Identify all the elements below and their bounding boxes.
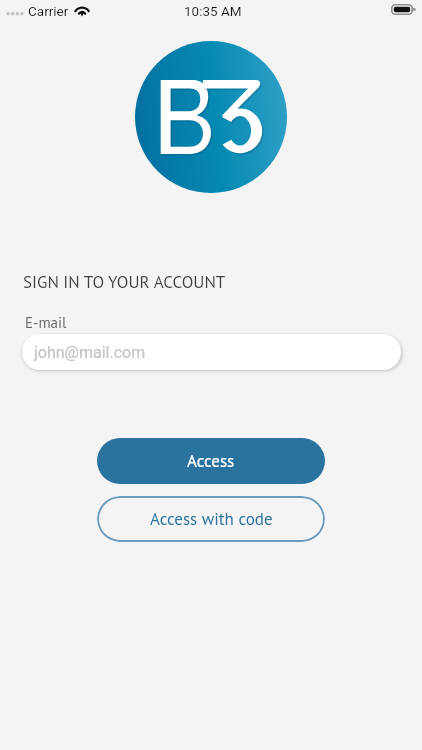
staticText: john@mail.com xyxy=(34,343,146,362)
button[interactable]: john@mail.com xyxy=(22,334,401,370)
staticText: Access with code xyxy=(150,508,273,530)
staticText: Access xyxy=(187,450,235,472)
staticText: 10:35 AM xyxy=(184,3,242,19)
staticText: SIGN IN TO YOUR ACCOUNT xyxy=(23,271,226,293)
other: Wi-Fi signal xyxy=(74,4,90,16)
button[interactable]: Access xyxy=(97,438,325,484)
other: Battery full xyxy=(391,4,417,15)
button[interactable]: Access with code xyxy=(97,496,325,542)
staticText: E-mail xyxy=(25,313,67,332)
staticText: Carrier xyxy=(28,3,69,19)
